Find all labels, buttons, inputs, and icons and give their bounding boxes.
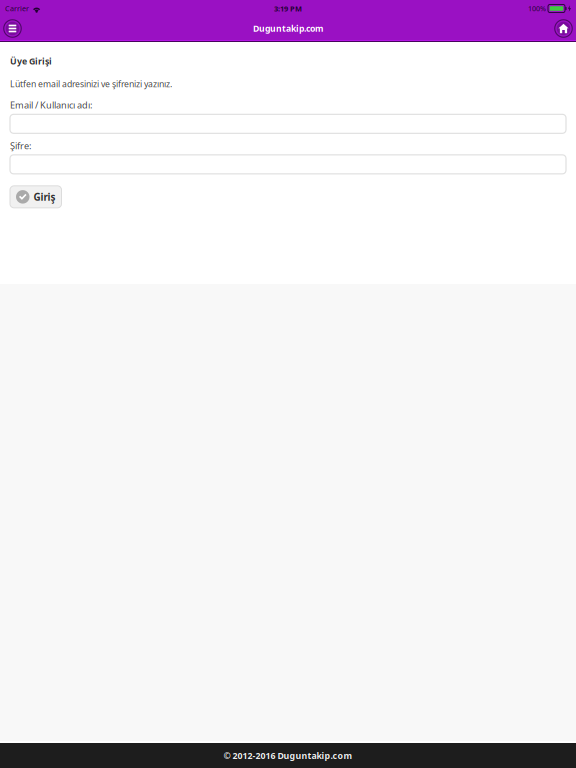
staticText: 100% bbox=[528, 4, 546, 13]
staticText: Üye Girişi bbox=[10, 55, 52, 67]
staticText: Duguntakip.com bbox=[253, 23, 323, 34]
button[interactable]: Giriş bbox=[10, 186, 61, 208]
staticText: Şifre: bbox=[10, 139, 31, 152]
button[interactable]: Menu bbox=[0, 17, 24, 40]
button[interactable]: Home bbox=[551, 17, 575, 40]
staticText: © 2012-2016 Duguntakip.com bbox=[223, 749, 352, 761]
staticText: Carrier bbox=[5, 4, 29, 13]
staticText: Giriş bbox=[33, 190, 55, 203]
staticText: Lütfen email adresinizi ve şifrenizi yaz… bbox=[10, 78, 172, 90]
staticText: 3:19 PM bbox=[274, 3, 302, 14]
staticText: Email / Kullanıcı adı: bbox=[10, 99, 92, 111]
